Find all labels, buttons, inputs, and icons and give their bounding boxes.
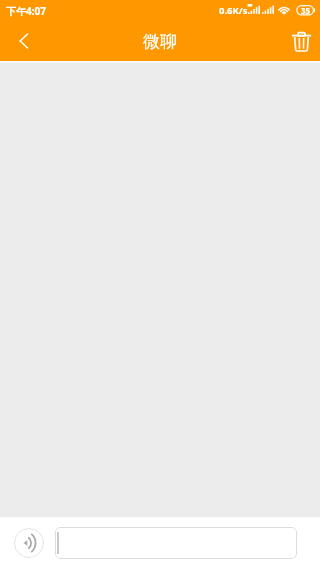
- button[interactable]: Voice input: [14, 528, 44, 558]
- staticText: 下午4:07: [6, 4, 46, 18]
- staticText: 微聊: [143, 31, 177, 52]
- button[interactable]: [55, 527, 297, 559]
- staticText: 35: [301, 5, 311, 16]
- staticText: 0.6K/s: [219, 4, 248, 17]
- button[interactable]: Back: [0, 21, 48, 61]
- button[interactable]: Delete: [282, 21, 320, 61]
